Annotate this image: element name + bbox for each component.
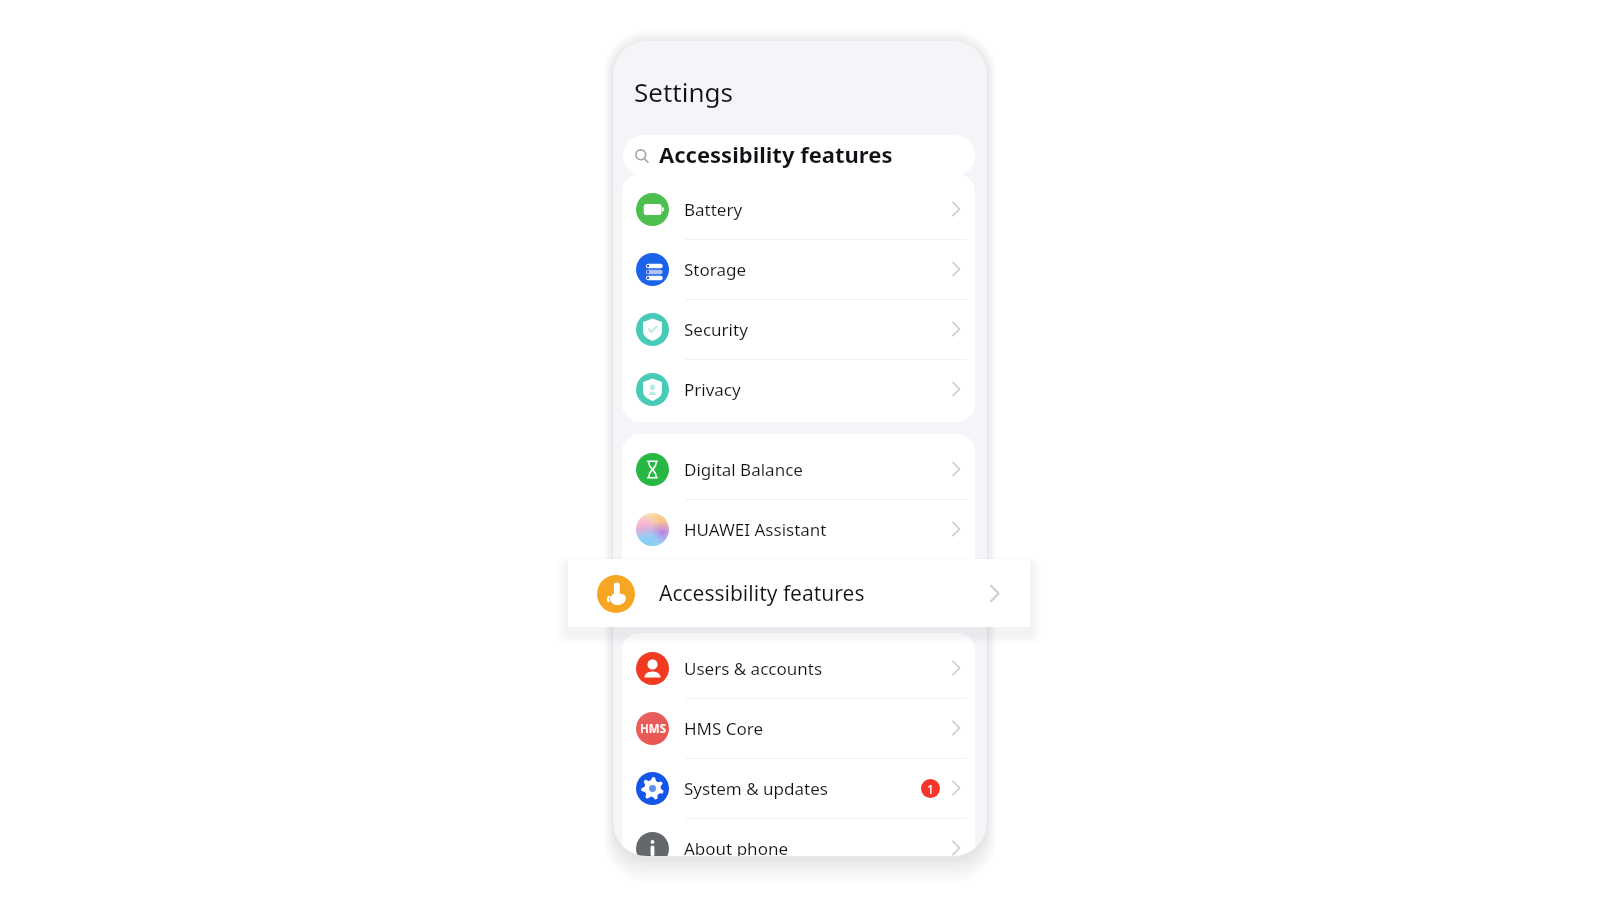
- staticText: Digital Balance: [684, 458, 803, 481]
- staticText: Users & accounts: [684, 657, 823, 680]
- button[interactable]: Storage: [622, 239, 975, 299]
- button[interactable]: Security: [622, 299, 975, 359]
- staticText: System & updates: [684, 777, 828, 800]
- staticText: Accessibility features: [659, 579, 865, 608]
- staticText: About phone: [684, 837, 789, 856]
- staticText: Battery: [684, 198, 743, 221]
- button[interactable]: HUAWEI Assistant: [622, 499, 975, 559]
- button[interactable]: HMS: [622, 698, 975, 758]
- button[interactable]: Users & accounts: [622, 638, 975, 698]
- staticText: HMS: [640, 721, 666, 737]
- staticText: Privacy: [684, 378, 741, 401]
- button[interactable]: Digital Balance: [622, 439, 975, 499]
- button[interactable]: Accessibility features: [622, 559, 975, 619]
- button[interactable]: Battery: [622, 179, 975, 239]
- button[interactable]: About phone: [622, 818, 975, 856]
- staticText: HUAWEI Assistant: [684, 518, 827, 541]
- staticText: Accessibility features: [659, 139, 893, 169]
- staticText: Security: [684, 318, 748, 341]
- button[interactable]: System & updates: [622, 758, 975, 818]
- staticText: 1: [927, 781, 934, 797]
- button[interactable]: Privacy: [622, 359, 975, 419]
- staticText: Accessibility features: [684, 578, 851, 601]
- staticText: Storage: [684, 258, 747, 281]
- staticText: Settings: [634, 74, 733, 109]
- button[interactable]: Search: Accessibility features: [623, 135, 975, 176]
- button[interactable]: Accessibility features: [568, 559, 1030, 627]
- staticText: HMS Core: [684, 717, 764, 740]
